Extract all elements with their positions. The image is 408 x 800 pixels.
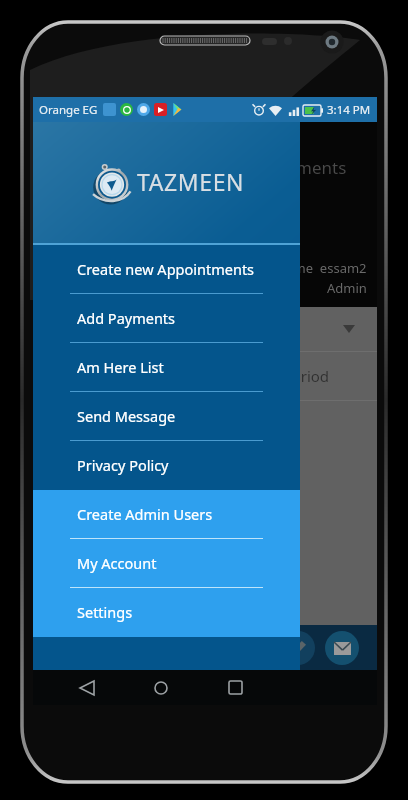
staticText: Add Payments — [77, 308, 176, 328]
button[interactable]: Create new Appointments — [33, 245, 300, 294]
staticText: Create new Appointments — [77, 259, 255, 279]
staticText: Appointments — [233, 156, 347, 179]
button[interactable]: Add Payments — [33, 294, 300, 343]
button[interactable]: Settings — [33, 588, 300, 637]
button[interactable]: My Account — [33, 539, 300, 588]
button[interactable]: Home — [135, 670, 187, 705]
staticText: 3:14 PM — [327, 102, 371, 118]
button[interactable]: Edit — [281, 631, 315, 665]
staticText: My Account — [77, 553, 157, 573]
staticText: Admin — [327, 279, 367, 297]
staticText: Create Admin Users — [77, 504, 213, 524]
staticText: Orange EG — [39, 102, 98, 118]
staticText: Settings — [77, 602, 133, 622]
staticText: TAZMEEN — [137, 166, 245, 197]
button[interactable]: Create Admin Users — [33, 490, 300, 539]
button[interactable]: Am Here List — [33, 343, 300, 392]
button[interactable]: Recents — [209, 670, 261, 705]
staticText: Privacy Policy — [77, 455, 169, 475]
button[interactable]: Send Message — [33, 392, 300, 441]
staticText: Welcome essam2 — [257, 259, 367, 277]
staticText: Am Here List — [77, 357, 164, 377]
button[interactable]: Send message — [325, 631, 359, 665]
button[interactable]: Back — [61, 670, 113, 705]
button[interactable]: Privacy Policy — [33, 441, 300, 490]
staticText: Send Message — [77, 406, 176, 426]
staticText: period — [283, 366, 330, 386]
